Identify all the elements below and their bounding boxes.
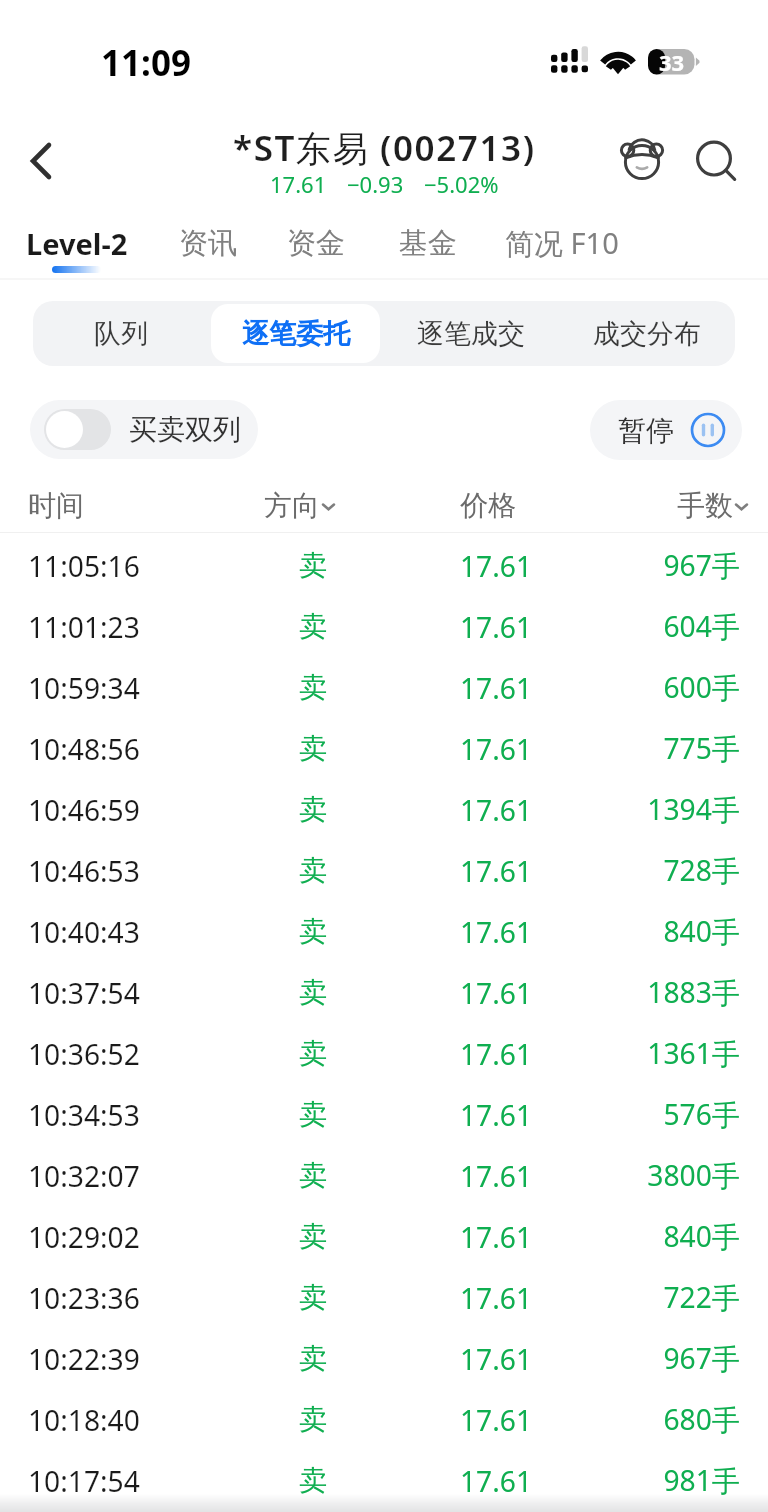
button[interactable]: 10:40:43 — [0, 901, 768, 962]
button[interactable]: 10:29:02 — [0, 1206, 768, 1267]
staticText: 17.61 — [436, 608, 556, 646]
staticText: 卖 — [253, 1219, 373, 1255]
staticText: 10:18:40 — [28, 1401, 140, 1439]
staticText: 604手 — [540, 607, 740, 646]
staticText: 成交分布 — [593, 317, 701, 351]
staticText: 10:46:53 — [28, 852, 140, 890]
button[interactable]: 买卖双列 — [30, 400, 258, 459]
staticText: 17.61 — [436, 1279, 556, 1317]
button[interactable]: 10:32:07 — [0, 1145, 768, 1206]
staticText: 简况 F10 — [505, 223, 619, 263]
staticText: 卖 — [253, 1280, 373, 1316]
staticText: 576手 — [540, 1095, 740, 1134]
button[interactable]: Assistant — [614, 133, 670, 189]
staticText: 资讯 — [179, 225, 237, 262]
button[interactable]: 基金 — [389, 220, 467, 266]
staticText: 722手 — [540, 1278, 740, 1317]
staticText: 967手 — [540, 1339, 740, 1378]
staticText: 卖 — [253, 853, 373, 889]
staticText: 时间 — [28, 488, 84, 523]
staticText: 10:34:53 — [28, 1096, 140, 1134]
staticText: 17.61 — [436, 547, 556, 585]
staticText: 10:22:39 — [28, 1340, 140, 1378]
button[interactable]: Search — [688, 134, 744, 190]
button[interactable]: 资金 — [277, 220, 355, 266]
staticText: 680手 — [540, 1400, 740, 1439]
button[interactable]: 10:23:36 — [0, 1267, 768, 1328]
button[interactable]: 10:18:40 — [0, 1389, 768, 1450]
staticText: 10:59:34 — [28, 669, 140, 707]
staticText: 10:46:59 — [28, 791, 140, 829]
staticText: 买卖双列 — [129, 412, 241, 447]
staticText: 17.61 — [436, 852, 556, 890]
staticText: 卖 — [253, 1036, 373, 1072]
staticText: 17.61 — [436, 1096, 556, 1134]
staticText: 17.61 — [436, 1462, 556, 1500]
button[interactable]: 11:01:23 — [0, 596, 768, 657]
staticText: 33 — [659, 47, 685, 73]
staticText: −0.93 — [347, 169, 404, 199]
staticText: 10:37:54 — [28, 974, 140, 1012]
staticText: 17.61 — [436, 1157, 556, 1195]
button[interactable]: 10:36:52 — [0, 1023, 768, 1084]
staticText: 981手 — [540, 1461, 740, 1500]
staticText: 卖 — [253, 731, 373, 767]
button[interactable]: 10:46:59 — [0, 779, 768, 840]
staticText: 17.61 — [436, 1340, 556, 1378]
staticText: 17.61 — [436, 913, 556, 951]
staticText: 3800手 — [540, 1156, 740, 1195]
staticText: 17.61 — [436, 1401, 556, 1439]
button[interactable]: Back — [13, 133, 69, 189]
button[interactable]: 10:34:53 — [0, 1084, 768, 1145]
staticText: 17.61 — [436, 669, 556, 707]
button[interactable]: 逐笔成交 — [386, 304, 556, 363]
staticText: 队列 — [94, 317, 148, 351]
staticText: 10:36:52 — [28, 1035, 140, 1073]
staticText: 17.61 — [436, 791, 556, 829]
button[interactable]: 逐笔委托 — [211, 304, 380, 363]
staticText: 10:29:02 — [28, 1218, 140, 1256]
button[interactable]: 10:37:54 — [0, 962, 768, 1023]
staticText: 卖 — [253, 609, 373, 645]
button[interactable]: 10:46:53 — [0, 840, 768, 901]
staticText: 方向 — [264, 488, 320, 523]
staticText: 暂停 — [618, 413, 674, 448]
staticText: 卖 — [253, 1097, 373, 1133]
button[interactable]: 10:22:39 — [0, 1328, 768, 1389]
button[interactable]: 11:05:16 — [0, 535, 768, 596]
button[interactable]: 10:17:54 — [0, 1450, 768, 1511]
staticText: 卖 — [253, 1463, 373, 1499]
button[interactable]: 10:59:34 — [0, 657, 768, 718]
staticText: 10:23:36 — [28, 1279, 140, 1317]
staticText: 967手 — [540, 546, 740, 585]
button[interactable]: 暂停 — [590, 400, 742, 460]
staticText: 10:17:54 — [28, 1462, 140, 1500]
staticText: 728手 — [540, 851, 740, 890]
staticText: 卖 — [253, 1402, 373, 1438]
button[interactable]: 成交分布 — [562, 304, 732, 363]
staticText: 17.61 — [436, 1035, 556, 1073]
staticText: 840手 — [540, 912, 740, 951]
staticText: 1361手 — [540, 1034, 740, 1073]
button[interactable]: 资讯 — [169, 220, 247, 266]
staticText: 逐笔成交 — [417, 317, 525, 351]
button[interactable]: 简况 F10 — [495, 220, 629, 266]
staticText: 11:05:16 — [28, 547, 140, 585]
staticText: 10:48:56 — [28, 730, 140, 768]
staticText: 卖 — [253, 914, 373, 950]
staticText: 卖 — [253, 1341, 373, 1377]
staticText: 11:09 — [101, 39, 191, 87]
button[interactable]: Level-2 — [16, 220, 138, 266]
staticText: 11:01:23 — [28, 608, 140, 646]
staticText: 10:40:43 — [28, 913, 140, 951]
staticText: *ST东易 (002713) — [233, 124, 536, 172]
staticText: −5.02% — [424, 169, 499, 199]
button[interactable]: 10:48:56 — [0, 718, 768, 779]
staticText: 840手 — [540, 1217, 740, 1256]
staticText: 10:32:07 — [28, 1157, 140, 1195]
staticText: 1394手 — [540, 790, 740, 829]
button[interactable]: 队列 — [36, 304, 205, 363]
staticText: Level-2 — [26, 224, 128, 263]
staticText: 600手 — [540, 668, 740, 707]
staticText: 775手 — [540, 729, 740, 768]
